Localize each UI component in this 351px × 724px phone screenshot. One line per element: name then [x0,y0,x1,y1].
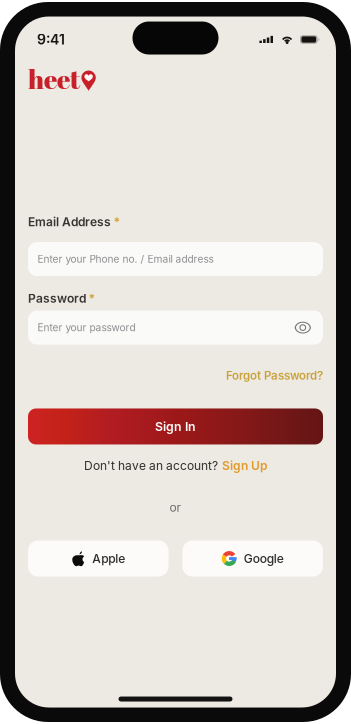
button[interactable]: Don't have an account? [28,458,323,473]
button[interactable]: Show password [295,321,311,335]
staticText: Forgot Password? [226,369,323,382]
staticText: Apple [92,551,125,566]
staticText: Sign Up [222,458,267,473]
button[interactable]: Google [182,540,323,576]
staticText: heet [28,61,80,97]
staticText: or [169,500,181,514]
staticText: * [88,291,95,306]
staticText: Sign In [155,419,196,434]
staticText: Enter your Phone no. / Email address [37,253,213,265]
button[interactable]: Forgot Password? [226,369,323,382]
staticText: Google [244,551,284,566]
staticText: 9:41 [37,31,65,48]
staticText: Password [28,291,86,306]
staticText: * [113,215,120,229]
button[interactable]: Sign In [28,408,323,444]
button[interactable]: Apple [28,540,168,576]
staticText: Don't have an account? [84,458,218,473]
staticText: Enter your password [37,321,135,334]
staticText: Email Address [28,215,111,229]
